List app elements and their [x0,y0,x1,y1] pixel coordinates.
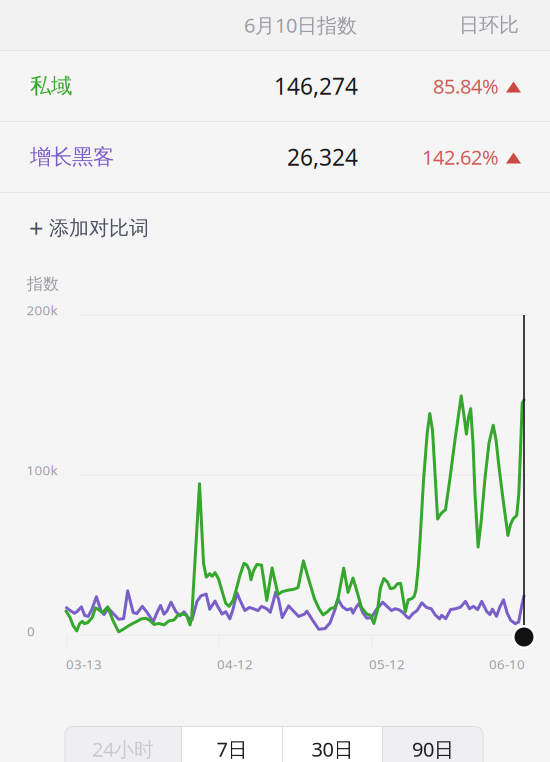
button[interactable]: 90日 [383,726,483,762]
staticText: 6月10日指数 [244,12,357,38]
staticText: 142.62% [422,144,499,170]
staticText: 06-10 [489,655,525,673]
staticText: 200k [26,301,57,319]
button[interactable]: 增长黑客 [0,122,550,192]
staticText: 24小时 [92,736,154,762]
staticText: 添加对比词 [49,216,149,240]
staticText: 0 [27,622,35,640]
staticText: + [29,211,43,245]
staticText: 指数 [27,274,59,294]
staticText: 私域 [30,73,72,99]
button[interactable]: 7日 [182,726,282,762]
staticText: 03-13 [66,655,102,673]
staticText: 05-12 [369,655,405,673]
staticText: 100k [26,461,57,479]
button[interactable]: 24小时 [65,726,181,762]
staticText: 30日 [311,736,353,762]
staticText: 04-12 [217,655,253,673]
staticText: 增长黑客 [30,144,114,170]
staticText: 90日 [412,736,454,762]
button[interactable]: 30日 [283,726,382,762]
staticText: 85.84% [433,73,499,99]
staticText: 146,274 [274,71,358,101]
staticText: 日环比 [459,13,519,37]
button[interactable]: + [0,193,550,263]
staticText: 26,324 [287,142,358,172]
staticText: 7日 [216,736,247,762]
button[interactable]: 私域 [0,51,550,121]
